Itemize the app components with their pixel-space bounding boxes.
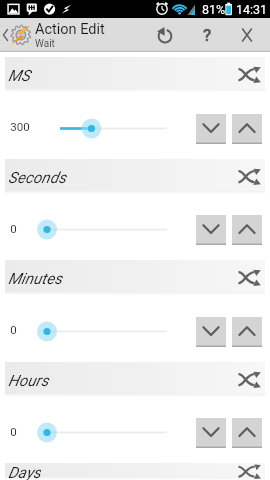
- staticText: MS: [8, 67, 31, 85]
- staticText: Wait: [35, 38, 55, 50]
- button[interactable]: Randomise Minutes: [229, 260, 270, 295]
- button[interactable]: Decrease Seconds: [196, 215, 226, 245]
- button[interactable]: Navigate up: [0, 18, 32, 52]
- button[interactable]: Decrease MS: [196, 114, 226, 144]
- button[interactable]: Revert: [139, 18, 190, 52]
- button[interactable]: Close: [224, 18, 270, 52]
- staticText: Seconds: [8, 169, 66, 187]
- staticText: 0: [10, 222, 17, 235]
- button[interactable]: Decrease Minutes: [196, 317, 226, 347]
- button[interactable]: Decrease Hours: [196, 418, 226, 448]
- button[interactable]: Hours value slider: [17, 416, 196, 446]
- staticText: 0: [10, 425, 17, 438]
- button[interactable]: Randomise Seconds: [229, 159, 270, 194]
- button[interactable]: Increase MS: [232, 114, 262, 144]
- button[interactable]: Randomise MS: [229, 57, 270, 92]
- staticText: 300: [10, 120, 30, 133]
- staticText: ?: [203, 25, 212, 45]
- staticText: Minutes: [8, 270, 63, 288]
- button[interactable]: MS value slider: [30, 112, 196, 142]
- button[interactable]: Help: [190, 18, 224, 52]
- staticText: Days: [8, 464, 41, 480]
- button[interactable]: Randomise Hours: [229, 362, 270, 397]
- button[interactable]: Increase Minutes: [232, 317, 262, 347]
- staticText: Action Edit: [35, 21, 105, 38]
- button[interactable]: Minutes value slider: [17, 315, 196, 345]
- staticText: 81%: [202, 2, 226, 17]
- button[interactable]: Seconds value slider: [17, 213, 196, 243]
- button[interactable]: Increase Seconds: [232, 215, 262, 245]
- staticText: 0: [10, 323, 17, 336]
- staticText: 14:31: [236, 2, 268, 17]
- button[interactable]: Increase Hours: [232, 418, 262, 448]
- button[interactable]: Randomise Days: [229, 463, 270, 480]
- staticText: Hours: [8, 372, 49, 390]
